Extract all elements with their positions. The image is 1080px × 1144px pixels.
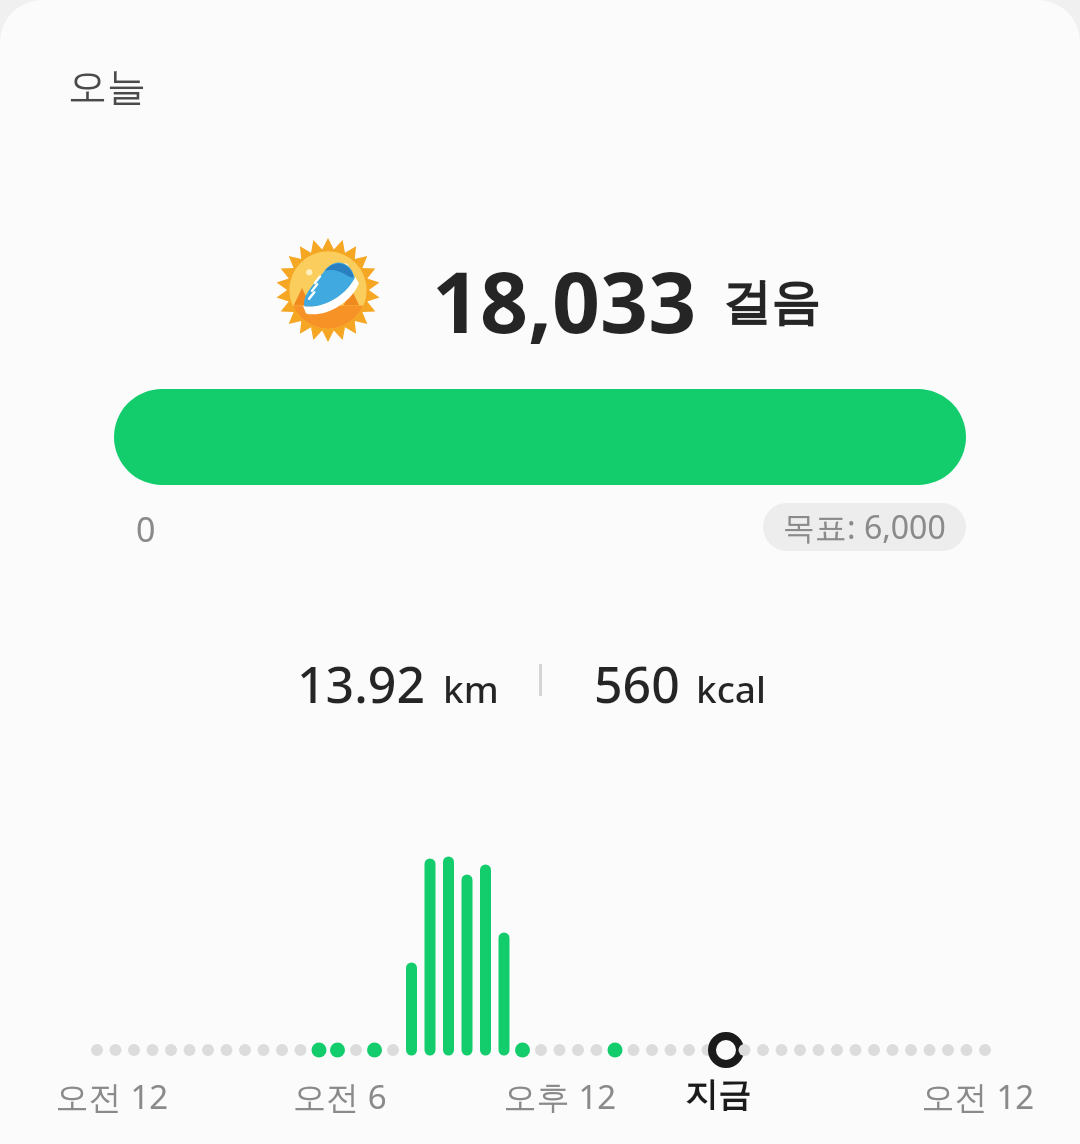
staticText: 목표: 6,000: [783, 505, 946, 549]
staticText: km: [443, 663, 499, 713]
button[interactable]: [114, 389, 966, 485]
button[interactable]: [0, 820, 1080, 1080]
button[interactable]: 목표: 6,000: [763, 503, 966, 551]
staticText: 오늘: [68, 62, 146, 111]
staticText: 걸음: [722, 272, 820, 334]
staticText: kcal: [696, 663, 767, 713]
staticText: 오전 12: [918, 1074, 1038, 1120]
button[interactable]: 오늘: [0, 0, 1080, 1144]
staticText: 560: [594, 650, 680, 718]
staticText: 지금: [679, 1074, 757, 1120]
staticText: 0: [136, 506, 156, 552]
staticText: 오전 12: [52, 1074, 172, 1120]
staticText: 오전 6: [285, 1074, 395, 1120]
staticText: 18,033: [432, 243, 697, 357]
other: Steps badge: [276, 238, 380, 342]
staticText: 오후 12: [500, 1074, 620, 1120]
staticText: 13.92: [297, 650, 425, 718]
